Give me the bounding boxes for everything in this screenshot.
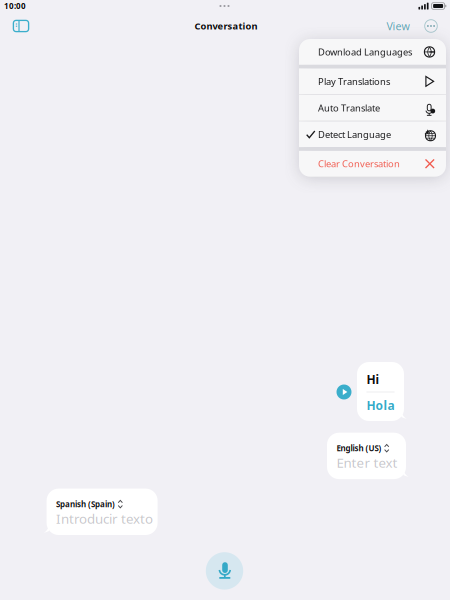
button[interactable]: More Options: [420, 15, 442, 37]
button[interactable]: Show Sidebar: [7, 13, 35, 39]
button[interactable]: Play Translation: [335, 383, 353, 401]
staticText: View: [386, 19, 409, 33]
button[interactable]: Hi: [357, 362, 404, 421]
staticText: Enter text: [336, 454, 397, 471]
staticText: Hi: [366, 371, 379, 387]
staticText: Clear Conversation: [318, 158, 400, 170]
staticText: Detect Language: [318, 128, 391, 141]
button[interactable]: Spanish (Spain): [47, 489, 158, 535]
staticText: Conversation: [194, 20, 257, 32]
button[interactable]: Detect Language: [299, 121, 446, 147]
button[interactable]: Auto Translate: [299, 95, 446, 121]
button[interactable]: Clear Conversation: [299, 151, 446, 177]
staticText: English (US): [336, 443, 381, 453]
staticText: Download Languages: [318, 46, 412, 58]
staticText: Play Translations: [318, 75, 390, 88]
button[interactable]: View: [383, 13, 413, 39]
button[interactable]: Play Translations: [299, 68, 446, 94]
staticText: Spanish (Spain): [56, 499, 115, 509]
button[interactable]: Start Recording: [206, 552, 243, 590]
staticText: 10:00: [4, 1, 26, 11]
staticText: Introducir texto: [56, 510, 153, 527]
staticText: Hola: [366, 397, 394, 413]
button[interactable]: Download Languages: [299, 39, 446, 65]
staticText: Auto Translate: [318, 102, 380, 114]
button[interactable]: English (US): [327, 433, 406, 479]
